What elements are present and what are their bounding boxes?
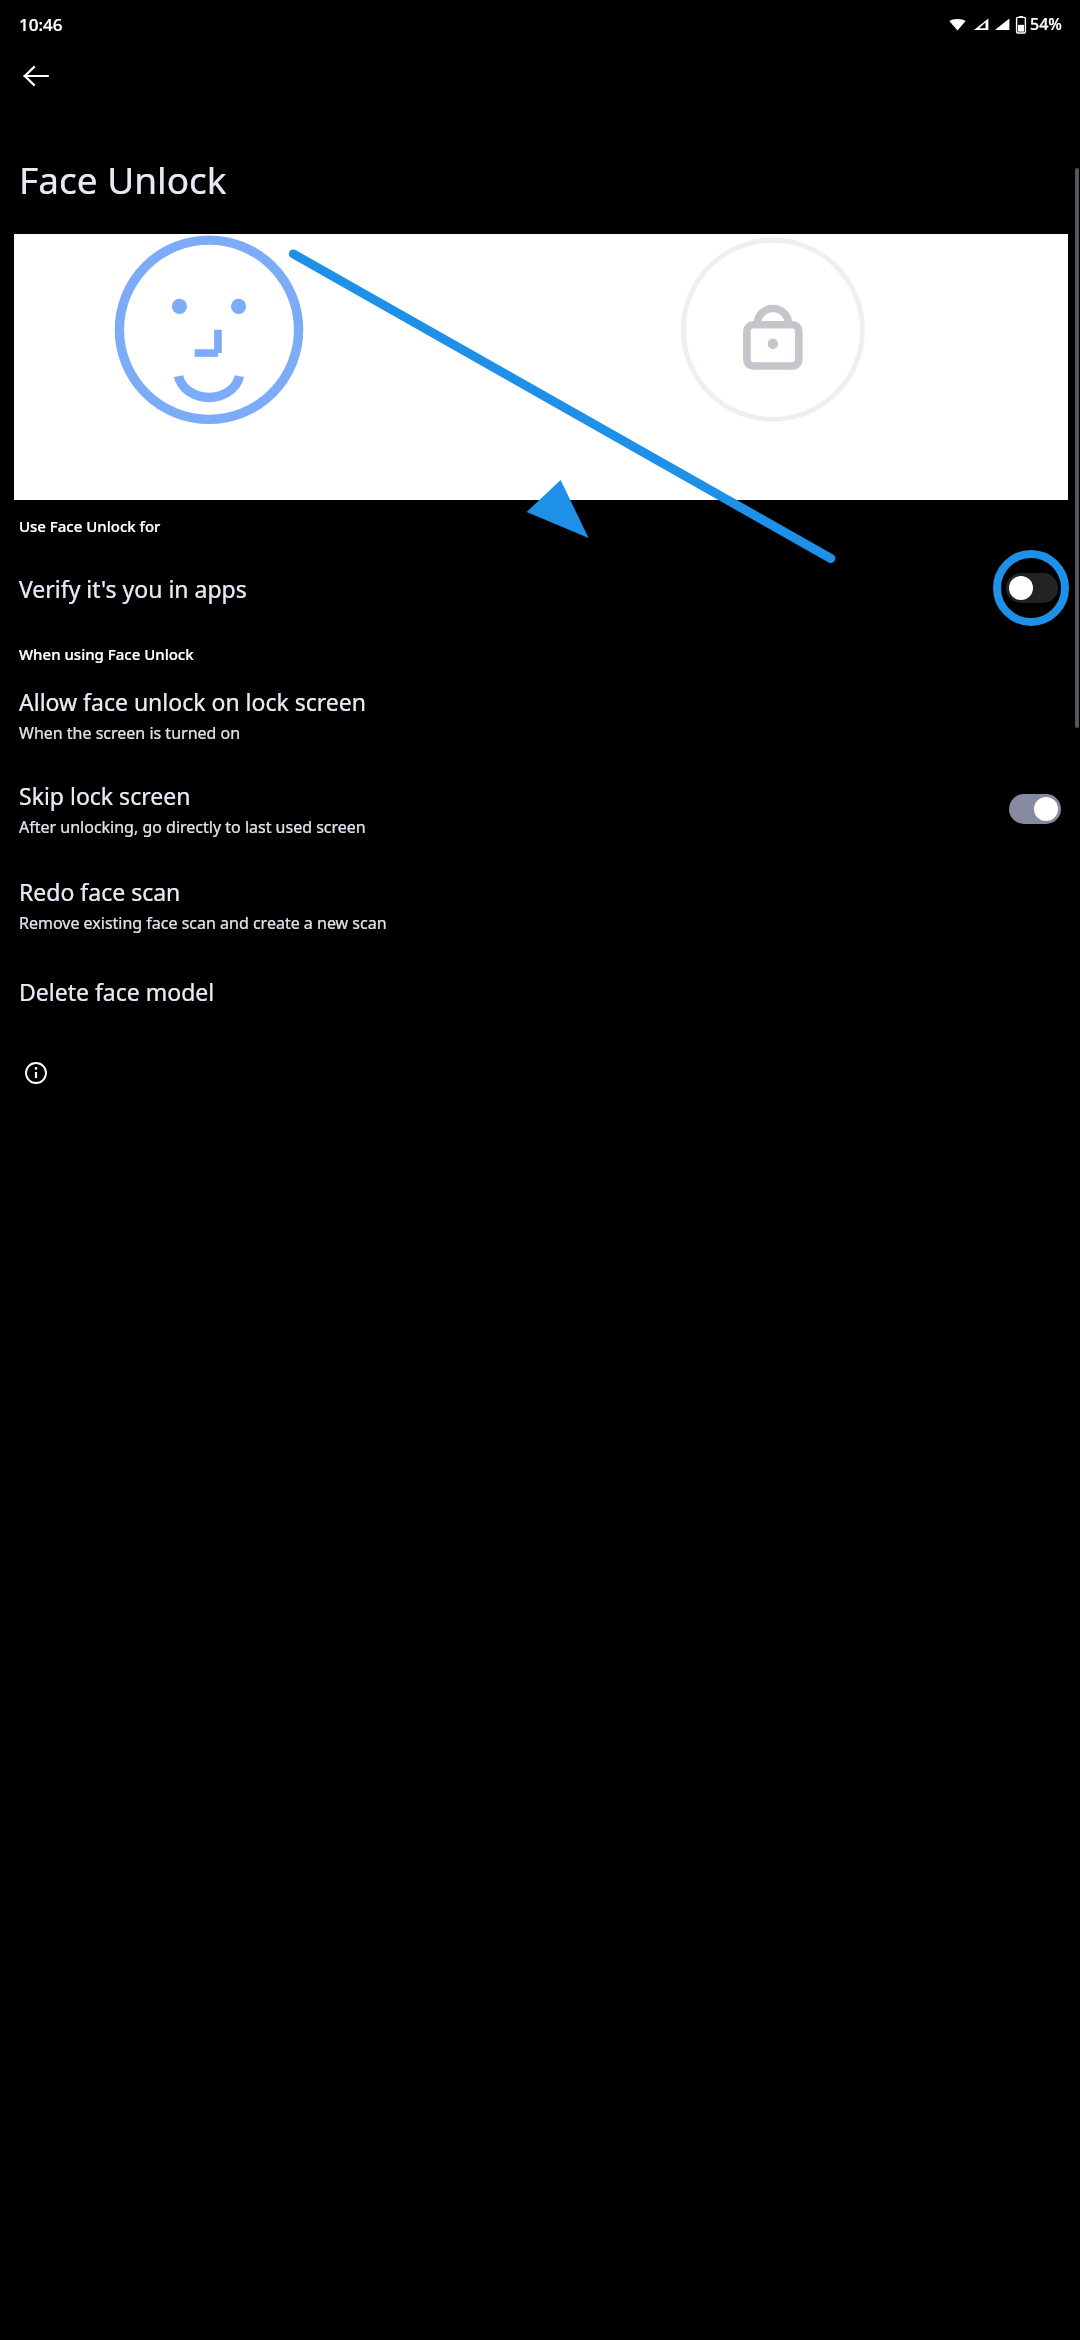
staticText: When using Face Unlock (19, 644, 194, 664)
button[interactable]: Redo face scan (0, 872, 1080, 944)
staticText: Delete face model (19, 976, 215, 1007)
staticText: Redo face scan (19, 876, 181, 907)
staticText: Face Unlock (19, 154, 227, 204)
button[interactable]: Verify it's you in apps (0, 550, 1080, 626)
button[interactable]: Back (8, 48, 64, 104)
staticText: After unlocking, go directly to last use… (19, 816, 366, 838)
button[interactable]: Delete face model (0, 972, 1080, 1017)
staticText: Use Face Unlock for (19, 516, 161, 536)
staticText: 10:46 (19, 13, 63, 36)
staticText: Verify it's you in apps (19, 573, 247, 604)
staticText: Skip lock screen (19, 780, 191, 811)
staticText: Remove existing face scan and create a n… (19, 912, 387, 934)
staticText: 54% (1030, 13, 1062, 35)
button[interactable]: Skip lock screen (0, 776, 1080, 846)
staticText: Allow face unlock on lock screen (19, 686, 366, 717)
button[interactable]: More information (14, 1051, 58, 1095)
staticText: When the screen is turned on (19, 722, 241, 744)
button[interactable]: Allow face unlock on lock screen (0, 682, 1080, 754)
